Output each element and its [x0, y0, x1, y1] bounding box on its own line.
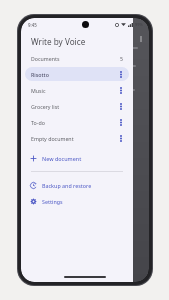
staticText: Backup and restore	[42, 182, 92, 189]
button[interactable]: Empty document	[25, 131, 129, 145]
button[interactable]: More options for Grocery list	[116, 101, 126, 111]
staticText: Write by Voice	[31, 36, 86, 47]
button[interactable]: New document	[21, 150, 133, 166]
staticText: To-do	[31, 119, 45, 126]
staticText: Documents	[31, 55, 60, 62]
staticText: Empty document	[31, 135, 74, 142]
button[interactable]: More options for Music	[116, 85, 126, 95]
staticText: 99%	[135, 22, 143, 27]
staticText: Settings	[42, 198, 63, 205]
staticText: 5	[120, 55, 123, 62]
staticText: Grocery list	[31, 103, 60, 110]
button[interactable]: To-do	[25, 115, 129, 129]
button[interactable]: More options for Risotto	[116, 69, 126, 79]
staticText: New document	[42, 155, 82, 162]
button[interactable]: Music	[25, 83, 129, 97]
staticText: 9:45	[28, 22, 37, 28]
staticText: Music	[31, 87, 46, 94]
button[interactable]: More options for Empty document	[116, 133, 126, 143]
button[interactable]: Backup and restore	[21, 177, 133, 193]
staticText: Risotto	[31, 71, 49, 78]
button[interactable]: More options for To-do	[116, 117, 126, 127]
button[interactable]: Settings	[21, 193, 133, 209]
button[interactable]: Grocery list	[25, 99, 129, 113]
button[interactable]: Risotto	[25, 67, 129, 81]
